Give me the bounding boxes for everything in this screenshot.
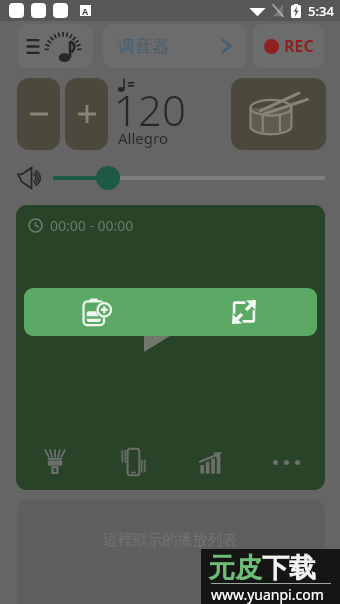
button[interactable]: Volume <box>17 166 43 190</box>
staticText: 5:34 <box>308 2 334 20</box>
staticText: 00:00 - 00:00 <box>50 216 134 235</box>
button[interactable]: Fullscreen <box>170 288 317 336</box>
staticText: Allegro <box>118 128 168 148</box>
staticText: 下载 <box>262 551 316 585</box>
button[interactable]: Metronome menu <box>17 24 93 68</box>
staticText: www.yuanpi.com <box>211 585 324 604</box>
staticText: 120 <box>114 81 186 138</box>
button[interactable]: Statistics <box>171 434 248 490</box>
button[interactable]: Vibrate <box>94 434 171 490</box>
staticText: 调音器 <box>118 36 169 57</box>
button[interactable]: Flashlight <box>16 434 94 490</box>
staticText: REC <box>284 35 314 57</box>
staticText: 這裡顯示的播放列表 <box>0 531 340 550</box>
staticText: A <box>82 5 89 16</box>
button[interactable]: Volume level <box>96 166 120 190</box>
button[interactable]: More options <box>248 434 325 490</box>
button[interactable]: 调音器 <box>103 24 247 68</box>
button[interactable]: Increase tempo <box>65 78 108 150</box>
button[interactable]: Save to battery <box>24 288 170 336</box>
button[interactable]: Decrease tempo <box>17 78 60 150</box>
staticText: 元皮 <box>208 551 262 585</box>
button[interactable]: Drum sound <box>231 78 326 150</box>
button[interactable]: REC <box>253 24 324 68</box>
